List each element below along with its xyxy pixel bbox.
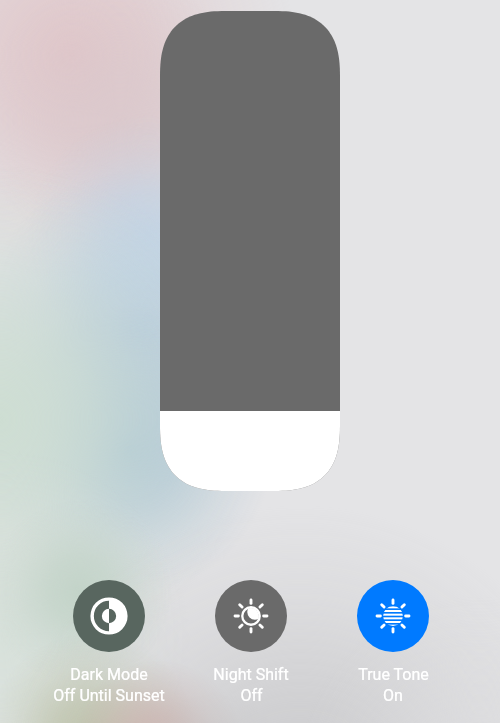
staticText: Night Shift	[213, 665, 289, 684]
staticText: On	[383, 686, 403, 705]
button[interactable]: Dark Mode	[38, 580, 180, 705]
staticText: Off Until Sunset	[53, 686, 165, 705]
staticText: Dark Mode	[70, 665, 148, 684]
button[interactable]: True Tone	[322, 580, 464, 705]
other: Dark Mode	[73, 580, 145, 652]
other: Night Shift	[215, 580, 287, 652]
staticText: True Tone	[358, 665, 429, 684]
button[interactable]	[160, 11, 340, 491]
button[interactable]: Night Shift	[180, 580, 322, 705]
staticText: Off	[240, 686, 263, 705]
other: True Tone	[357, 580, 429, 652]
